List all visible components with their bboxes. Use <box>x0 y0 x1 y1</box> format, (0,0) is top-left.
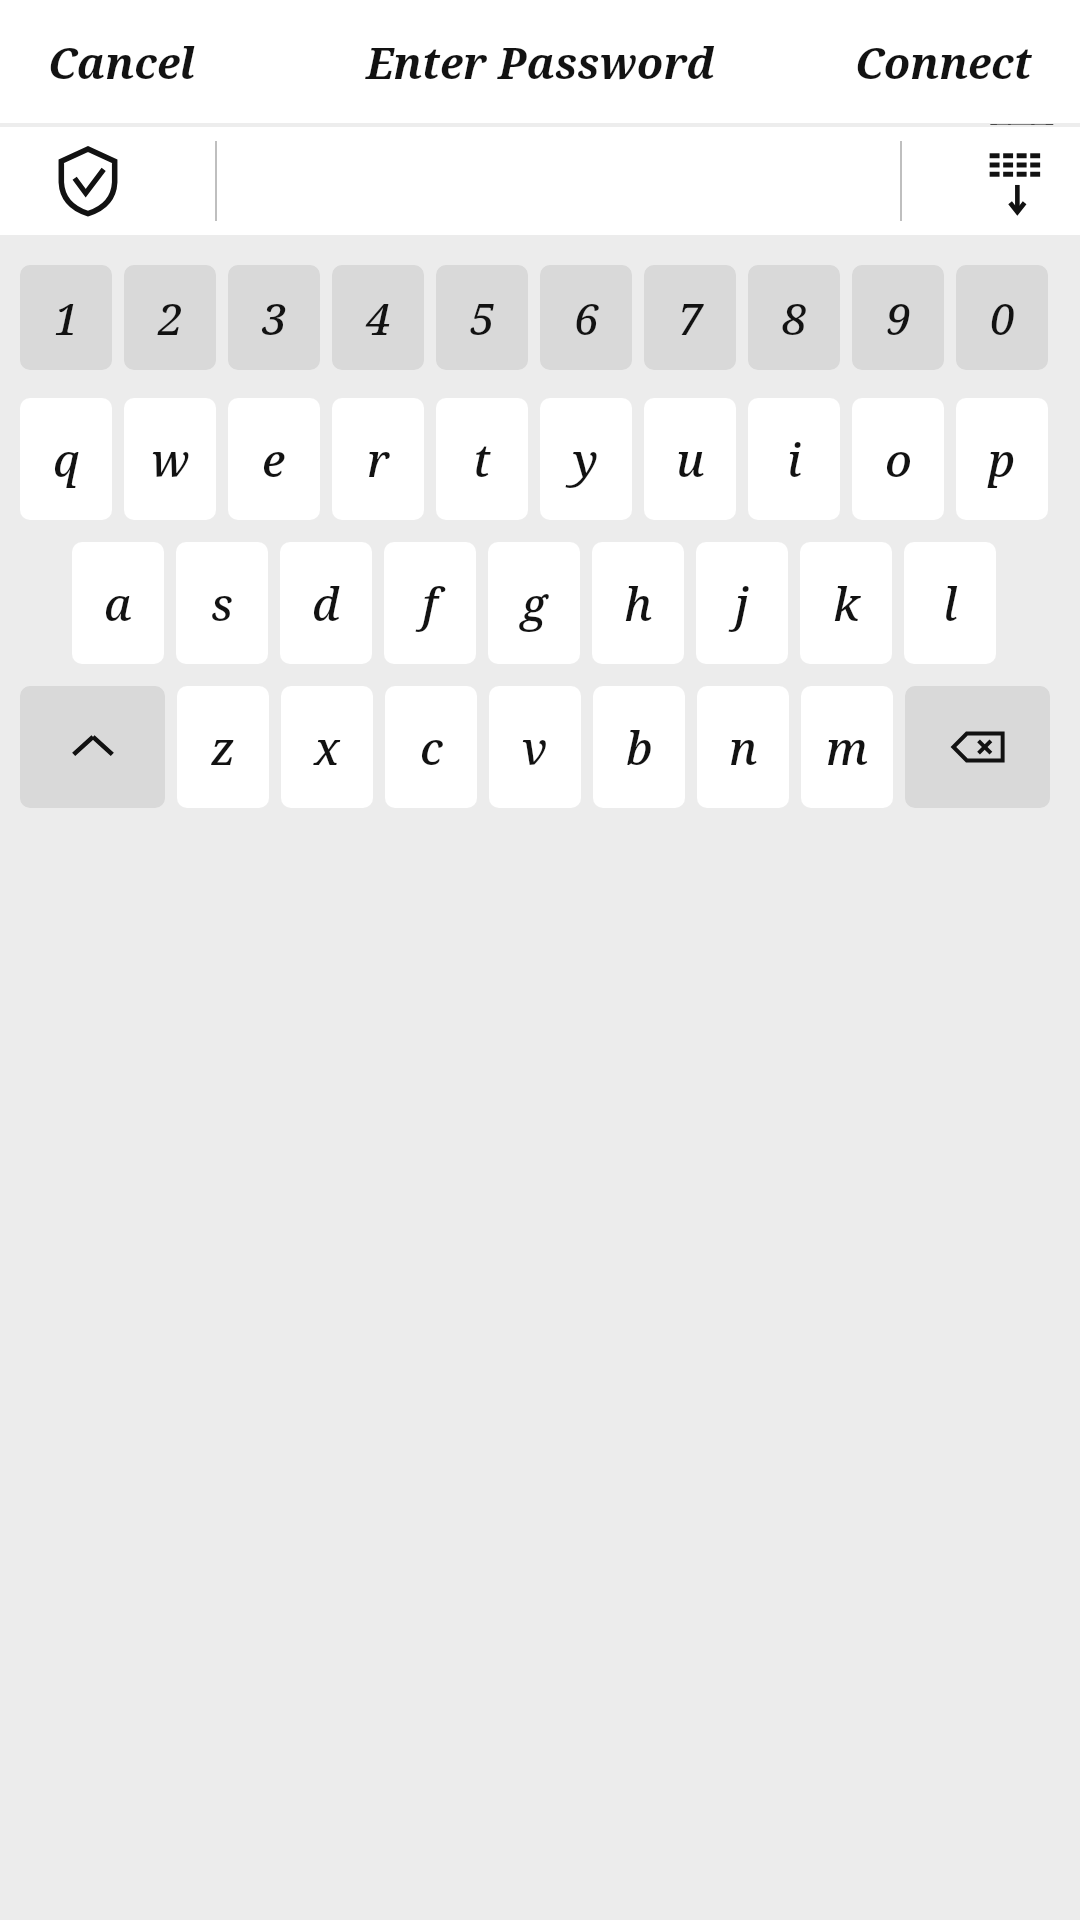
staticText: v <box>522 716 548 779</box>
staticText: x <box>314 716 340 779</box>
button[interactable]: 9 <box>852 265 944 370</box>
staticText: e <box>262 428 286 491</box>
staticText: f <box>422 572 438 635</box>
staticText: 3 <box>262 288 287 348</box>
staticText: n <box>729 716 758 779</box>
staticText: 0 <box>990 288 1015 348</box>
button[interactable]: Shift <box>20 686 165 808</box>
staticText: q <box>53 428 80 491</box>
staticText: 9 <box>886 288 911 348</box>
button[interactable]: l <box>904 542 996 664</box>
button[interactable]: p <box>956 398 1048 520</box>
button[interactable]: j <box>696 542 788 664</box>
staticText: j <box>735 572 749 635</box>
staticText: w <box>151 428 190 491</box>
staticText: 2 <box>158 288 183 348</box>
button[interactable]: w <box>124 398 216 520</box>
button[interactable]: d <box>280 542 372 664</box>
button[interactable]: y <box>540 398 632 520</box>
button[interactable]: 8 <box>748 265 840 370</box>
staticText: m <box>826 716 869 779</box>
button[interactable]: f <box>384 542 476 664</box>
button[interactable]: u <box>644 398 736 520</box>
staticText: l <box>943 572 958 635</box>
staticText: 7 <box>678 288 703 348</box>
button[interactable]: s <box>176 542 268 664</box>
button[interactable]: v <box>489 686 581 808</box>
staticText: 1 <box>54 288 79 348</box>
button[interactable]: o <box>852 398 944 520</box>
staticText: h <box>624 572 653 635</box>
button[interactable]: x <box>281 686 373 808</box>
staticText: g <box>521 572 547 635</box>
button[interactable]: q <box>20 398 112 520</box>
button[interactable]: c <box>385 686 477 808</box>
button[interactable]: i <box>748 398 840 520</box>
staticText: a <box>104 572 132 635</box>
staticText: o <box>885 428 912 491</box>
staticText: Enter Password <box>366 33 715 92</box>
button[interactable]: Hide keyboard <box>970 131 1070 231</box>
staticText: p <box>988 428 1016 491</box>
button[interactable]: Security <box>38 131 138 231</box>
button[interactable]: 5 <box>436 265 528 370</box>
button[interactable]: 1 <box>20 265 112 370</box>
staticText: b <box>626 716 653 779</box>
staticText: c <box>420 716 443 779</box>
button[interactable]: g <box>488 542 580 664</box>
staticText: t <box>473 428 491 491</box>
staticText: 5 <box>470 288 495 348</box>
staticText: Cancel <box>48 33 196 92</box>
button[interactable]: t <box>436 398 528 520</box>
staticText: k <box>833 572 860 635</box>
button[interactable]: z <box>177 686 269 808</box>
button[interactable]: e <box>228 398 320 520</box>
button[interactable]: a <box>72 542 164 664</box>
staticText: Connect <box>855 33 1032 92</box>
staticText: 8 <box>782 288 807 348</box>
button[interactable]: r <box>332 398 424 520</box>
button[interactable]: k <box>800 542 892 664</box>
button[interactable]: Backspace <box>905 686 1050 808</box>
staticText: r <box>367 428 390 491</box>
staticText: d <box>312 572 340 635</box>
staticText: z <box>211 716 236 779</box>
staticText: u <box>676 428 705 491</box>
button[interactable]: 3 <box>228 265 320 370</box>
button[interactable]: 7 <box>644 265 736 370</box>
staticText: i <box>787 428 802 491</box>
staticText: s <box>211 572 233 635</box>
button[interactable]: 0 <box>956 265 1048 370</box>
button[interactable]: 4 <box>332 265 424 370</box>
button[interactable]: Connect <box>841 19 1046 106</box>
staticText: 6 <box>574 288 599 348</box>
button[interactable]: n <box>697 686 789 808</box>
button[interactable]: b <box>593 686 685 808</box>
button[interactable]: m <box>801 686 893 808</box>
staticText: y <box>573 428 599 491</box>
button[interactable]: h <box>592 542 684 664</box>
button[interactable]: Cancel <box>34 19 210 106</box>
button[interactable]: 2 <box>124 265 216 370</box>
staticText: 4 <box>366 288 391 348</box>
button[interactable]: 6 <box>540 265 632 370</box>
